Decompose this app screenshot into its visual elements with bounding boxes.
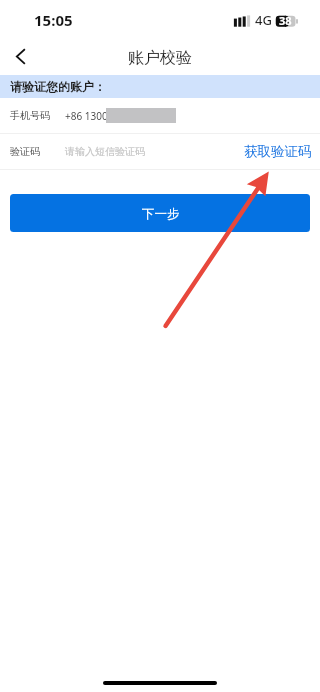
button[interactable]: Back	[4, 40, 36, 72]
staticText: 下一步	[142, 206, 180, 222]
staticText: 4G	[255, 11, 272, 29]
staticText: 15:05	[34, 10, 73, 30]
staticText: 手机号码	[10, 109, 50, 122]
staticText: +86 1300	[65, 109, 108, 123]
staticText: 38	[279, 13, 292, 28]
staticText: 验证码	[10, 145, 40, 158]
staticText: 请验证您的账户：	[10, 79, 106, 94]
staticText: 请输入短信验证码	[65, 145, 145, 158]
staticText: 获取验证码	[244, 143, 312, 160]
button[interactable]: 手机号码	[0, 98, 320, 133]
button[interactable]: 获取验证码	[244, 143, 320, 160]
button[interactable]: 下一步	[10, 194, 310, 232]
staticText: 账户校验	[128, 48, 192, 68]
